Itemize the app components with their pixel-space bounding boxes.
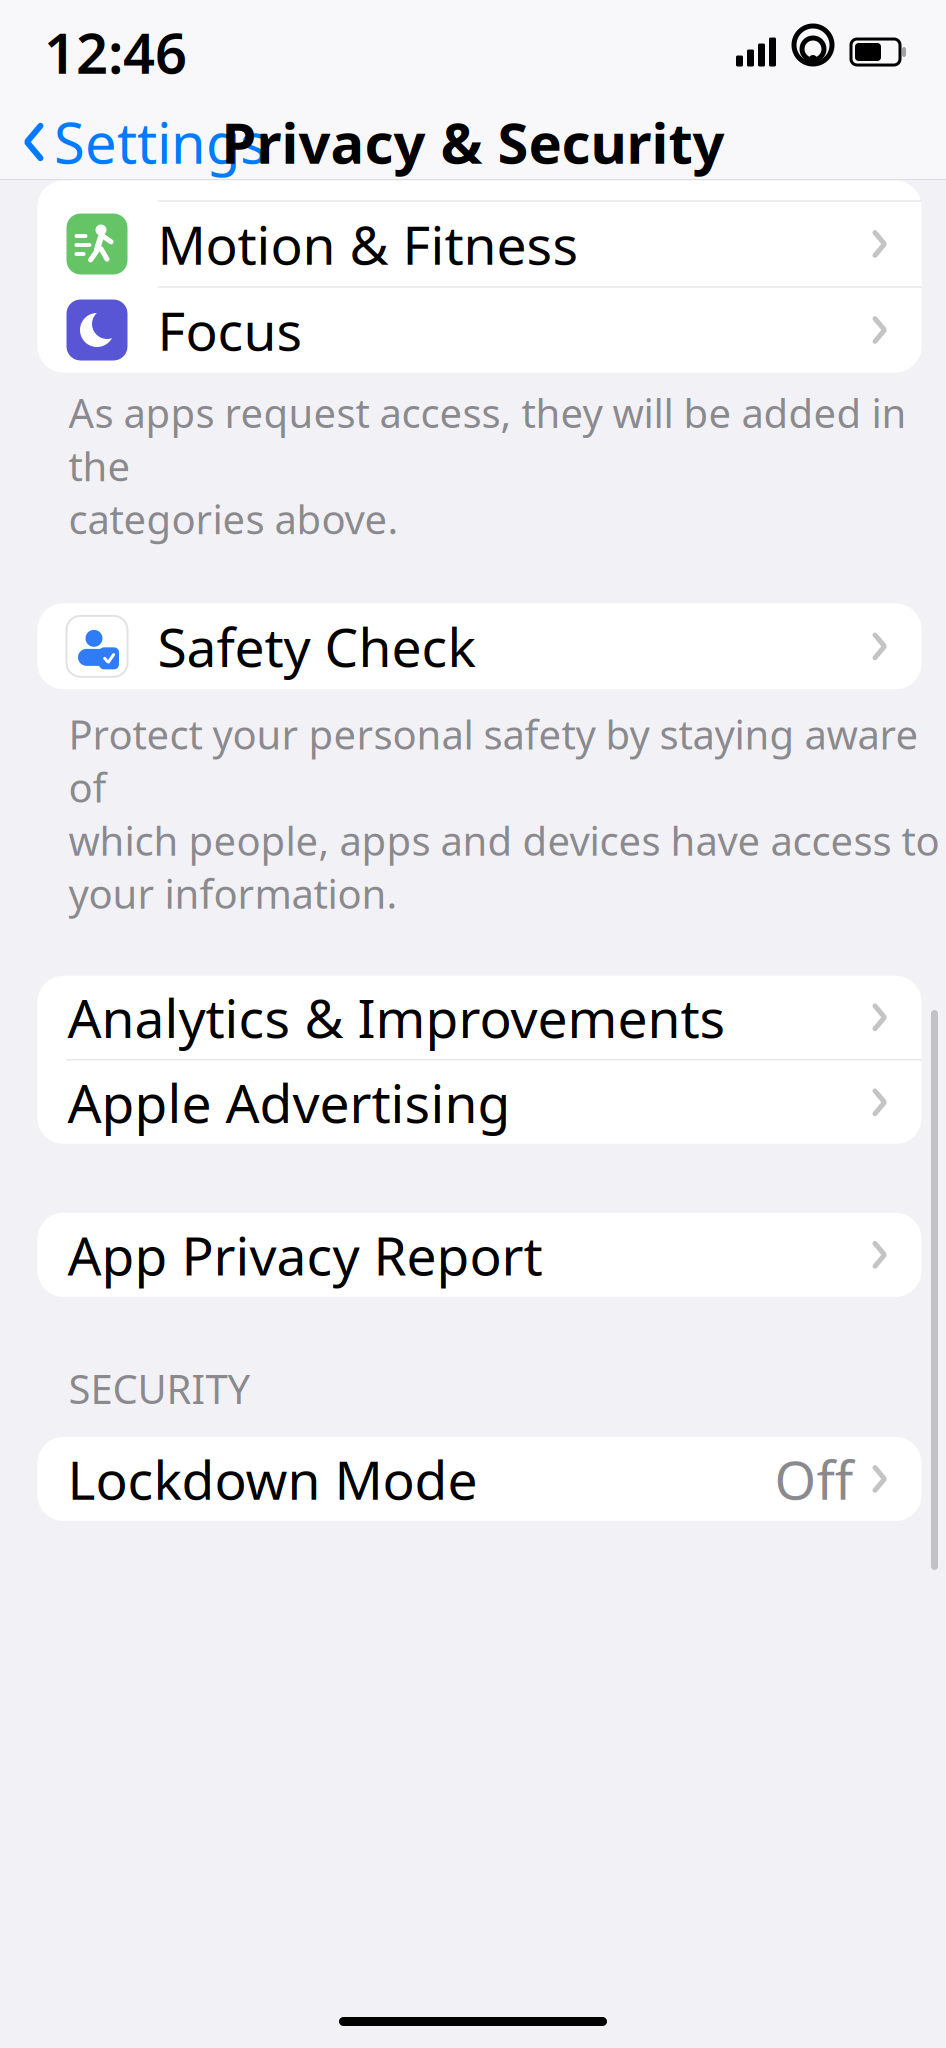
- staticText: Lockdown Mode: [67, 1443, 477, 1514]
- button[interactable]: App Privacy Report: [37, 1213, 921, 1297]
- staticText: Apple Advertising: [67, 1067, 510, 1138]
- button[interactable]: Analytics & Improvements: [37, 975, 921, 1059]
- staticText: 12:46: [44, 15, 187, 89]
- staticText: Safety Check: [157, 611, 475, 682]
- staticText: App Privacy Report: [67, 1219, 542, 1290]
- staticText: Settings: [54, 105, 267, 179]
- staticText: Privacy & Security: [221, 105, 724, 179]
- staticText: Off: [774, 1443, 853, 1514]
- button[interactable]: Focus: [37, 287, 921, 372]
- staticText: Focus: [157, 295, 302, 365]
- staticText: As apps request access, they will be add…: [68, 386, 906, 545]
- staticText: Protect your personal safety by staying …: [68, 707, 939, 920]
- button[interactable]: Apple Advertising: [37, 1060, 921, 1144]
- button[interactable]: Safety Check: [37, 603, 921, 689]
- staticText: Motion & Fitness: [157, 209, 578, 279]
- staticText: SECURITY: [68, 1362, 250, 1415]
- button[interactable]: Motion & Fitness: [37, 201, 921, 286]
- staticText: Analytics & Improvements: [67, 982, 725, 1053]
- button[interactable]: Lockdown Mode: [37, 1437, 921, 1521]
- button[interactable]: Settings: [0, 95, 267, 189]
